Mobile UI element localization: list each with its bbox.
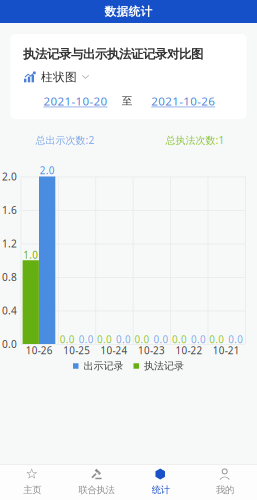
button[interactable]: 统计 bbox=[128, 464, 193, 500]
button[interactable]: 主页 bbox=[0, 464, 64, 500]
staticText: 数据统计 bbox=[104, 4, 152, 19]
button[interactable]: 2021-10-26 bbox=[151, 95, 231, 107]
staticText: 2.0 bbox=[40, 164, 55, 177]
staticText: 10-24 bbox=[100, 344, 127, 357]
staticText: 0.0 bbox=[2, 337, 17, 351]
staticText: 0.0 bbox=[134, 333, 149, 346]
staticText: 至 bbox=[122, 94, 133, 108]
staticText: 出示记录 bbox=[83, 360, 123, 372]
staticText: 0.0 bbox=[172, 333, 187, 346]
staticText: 0.0 bbox=[116, 333, 131, 346]
staticText: 主页 bbox=[23, 484, 41, 496]
staticText: 联合执法 bbox=[78, 484, 114, 496]
staticText: 10-26 bbox=[26, 344, 53, 357]
staticText: 0.0 bbox=[191, 333, 206, 346]
staticText: 10-22 bbox=[175, 344, 202, 357]
staticText: 1.2 bbox=[2, 237, 17, 250]
staticText: 1.6 bbox=[2, 203, 17, 217]
staticText: 执法记录 bbox=[144, 360, 184, 372]
staticText: 2021-10-26 bbox=[151, 93, 215, 109]
staticText: 10-25 bbox=[63, 344, 90, 357]
staticText: 总执法次数:1 bbox=[165, 133, 224, 147]
staticText: 0.8 bbox=[2, 270, 17, 284]
staticText: 2.0 bbox=[2, 170, 17, 183]
staticText: 0.0 bbox=[97, 333, 112, 346]
button[interactable]: 柱状图 bbox=[23, 71, 89, 83]
staticText: 0.0 bbox=[209, 333, 224, 346]
staticText: 0.0 bbox=[79, 333, 94, 346]
staticText: 我的 bbox=[216, 484, 234, 496]
staticText: 0.4 bbox=[2, 304, 17, 317]
staticText: 统计 bbox=[152, 484, 170, 496]
staticText: 10-23 bbox=[138, 344, 165, 357]
staticText: 总出示次数:2 bbox=[35, 133, 94, 147]
staticText: 10-21 bbox=[213, 344, 240, 357]
button[interactable]: 我的 bbox=[193, 464, 257, 500]
staticText: 0.0 bbox=[153, 333, 168, 346]
staticText: 0.0 bbox=[228, 333, 243, 346]
button[interactable]: 2021-10-20 bbox=[43, 95, 123, 107]
staticText: 2021-10-20 bbox=[43, 93, 107, 109]
staticText: 0.0 bbox=[60, 333, 75, 346]
button[interactable]: 联合执法 bbox=[64, 464, 128, 500]
staticText: 1.0 bbox=[23, 248, 38, 262]
staticText: 柱状图 bbox=[41, 70, 77, 84]
staticText: 执法记录与出示执法证记录对比图 bbox=[23, 46, 203, 62]
